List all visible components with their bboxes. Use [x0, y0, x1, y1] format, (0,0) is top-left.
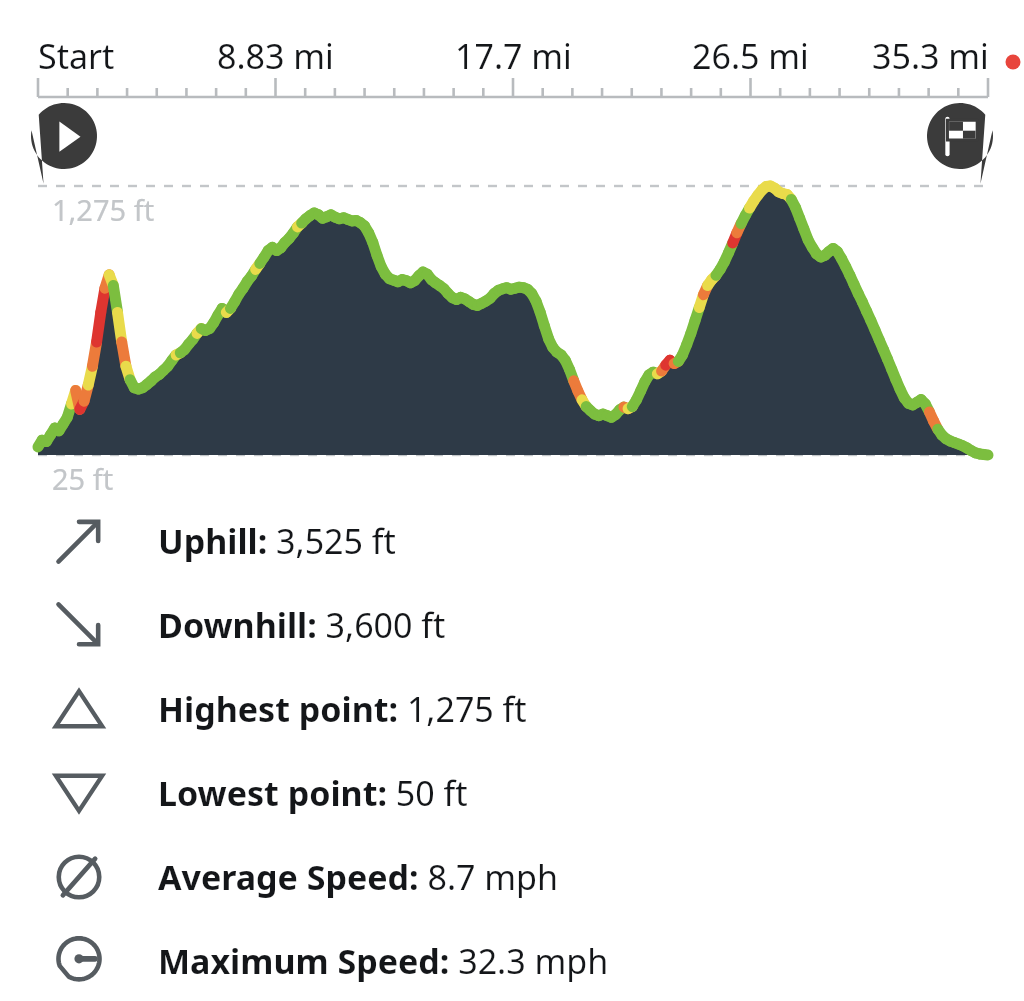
staticText: 17.7 mi	[455, 33, 572, 79]
button[interactable]: Lowest point: 50 ft	[0, 751, 1024, 835]
staticText: 25 ft	[52, 459, 114, 498]
button[interactable]: Route finish	[916, 96, 1008, 188]
staticText: 8.83 mi	[217, 33, 334, 79]
button[interactable]: Uphill: 3,525 ft	[0, 499, 1024, 583]
staticText: Lowest point: 50 ft	[158, 770, 468, 816]
staticText: Average Speed: 8.7 mph	[158, 854, 559, 900]
button[interactable]: Route start	[20, 96, 112, 188]
staticText: Highest point: 1,275 ft	[158, 686, 527, 732]
button[interactable]: Average Speed: 8.7 mph	[0, 835, 1024, 919]
button[interactable]: Highest point: 1,275 ft	[0, 667, 1024, 751]
staticText: Maximum Speed: 32.3 mph	[158, 938, 609, 984]
staticText: 35.3 mi	[872, 33, 989, 79]
staticText: Uphill: 3,525 ft	[158, 518, 396, 564]
staticText: 1,275 ft	[52, 190, 155, 229]
button[interactable]: Downhill: 3,600 ft	[0, 583, 1024, 667]
button[interactable]: Maximum Speed: 32.3 mph	[0, 919, 1024, 1001]
staticText: Start	[38, 33, 115, 79]
staticText: Downhill: 3,600 ft	[158, 602, 446, 648]
staticText: 26.5 mi	[692, 33, 809, 79]
